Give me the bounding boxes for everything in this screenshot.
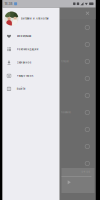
staticText: Моя музыка	[17, 34, 31, 38]
staticText: Любимое	[60, 111, 70, 114]
staticText: Скачанное	[17, 61, 32, 64]
button[interactable]: Виталий и Алена Гай	[2, 7, 59, 29]
button[interactable]: Раскрутка ВК	[2, 69, 59, 82]
staticText: Лучшее	[60, 60, 68, 63]
button[interactable]: Рекомендации	[2, 43, 59, 56]
staticText: 04:06	[81, 170, 89, 173]
staticText: Выйти	[17, 87, 26, 90]
button[interactable]: Выйти	[2, 82, 59, 95]
staticText: 18:38	[4, 2, 12, 6]
staticText: Рекомендации	[17, 48, 39, 51]
button[interactable]: Моя музыка	[2, 29, 59, 43]
staticText: Раскрутка ВК	[17, 74, 34, 77]
staticText: Виталий и Алена Гай	[21, 17, 49, 20]
button[interactable]: Скачанное	[2, 56, 59, 69]
